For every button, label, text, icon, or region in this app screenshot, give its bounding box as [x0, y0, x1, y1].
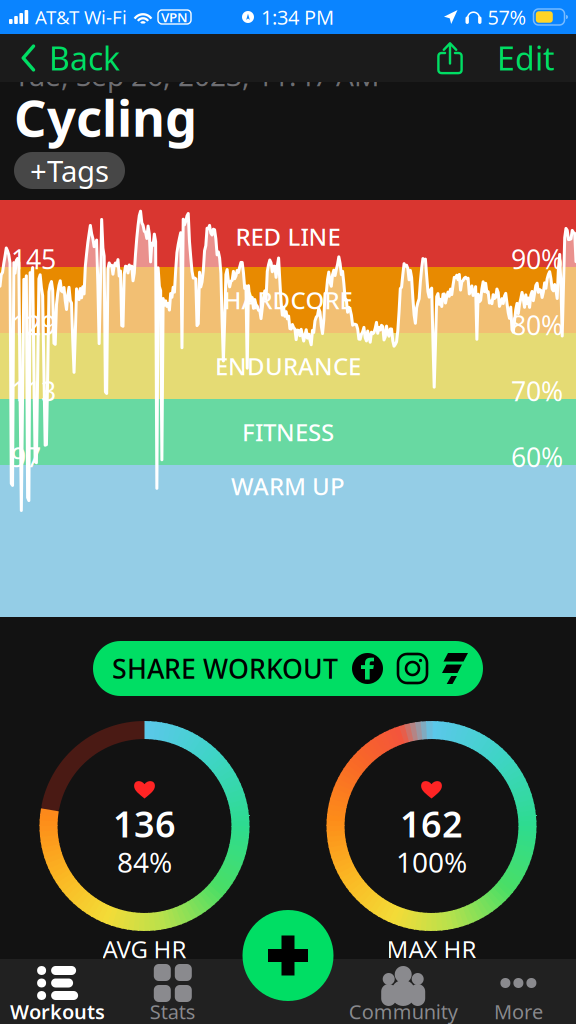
- staticText: MAX HR: [386, 933, 476, 965]
- staticText: +Tags: [30, 151, 109, 190]
- staticText: 100%: [396, 843, 467, 881]
- staticText: WARM UP: [231, 470, 345, 502]
- staticText: ENDURANCE: [215, 350, 361, 382]
- staticText: 1:34 PM: [261, 4, 334, 30]
- staticText: Community: [349, 998, 458, 1024]
- staticText: 70%: [511, 373, 563, 409]
- staticText: 129: [11, 307, 56, 343]
- staticText: 145: [11, 241, 56, 277]
- staticText: RED LINE: [235, 221, 340, 252]
- staticText: 113: [11, 373, 56, 409]
- button[interactable]: Community: [346, 959, 461, 1024]
- staticText: 136: [113, 800, 176, 847]
- button[interactable]: Workouts: [0, 959, 115, 1024]
- button[interactable]: Share: [412, 34, 472, 82]
- button[interactable]: Stats: [115, 959, 230, 1024]
- staticText: Stats: [150, 998, 196, 1024]
- button[interactable]: Edit: [472, 34, 576, 82]
- staticText: 80%: [511, 307, 563, 343]
- button[interactable]: Add workout: [242, 910, 333, 1001]
- staticText: Edit: [497, 37, 555, 79]
- staticText: 97: [11, 439, 41, 475]
- staticText: 60%: [511, 439, 563, 475]
- staticText: 84%: [117, 843, 172, 881]
- button[interactable]: More: [461, 959, 576, 1024]
- staticText: AT&T Wi-Fi: [35, 5, 127, 29]
- staticText: Workouts: [10, 998, 105, 1024]
- button[interactable]: Back: [0, 34, 132, 82]
- button[interactable]: SHARE WORKOUT: [93, 641, 483, 696]
- staticText: Cycling: [14, 83, 197, 151]
- button[interactable]: +Tags: [14, 152, 125, 189]
- staticText: VPN: [161, 8, 188, 26]
- staticText: Tue, Sep 26, 2023, 11:47 AM: [14, 57, 379, 94]
- staticText: 90%: [511, 241, 563, 277]
- staticText: SHARE WORKOUT: [112, 651, 338, 686]
- staticText: More: [494, 998, 543, 1024]
- staticText: FITNESS: [242, 416, 334, 448]
- staticText: AVG HR: [102, 933, 186, 965]
- staticText: Back: [49, 37, 120, 79]
- staticText: 162: [400, 800, 463, 847]
- staticText: HARDCORE: [223, 284, 352, 316]
- staticText: 57%: [487, 4, 526, 30]
